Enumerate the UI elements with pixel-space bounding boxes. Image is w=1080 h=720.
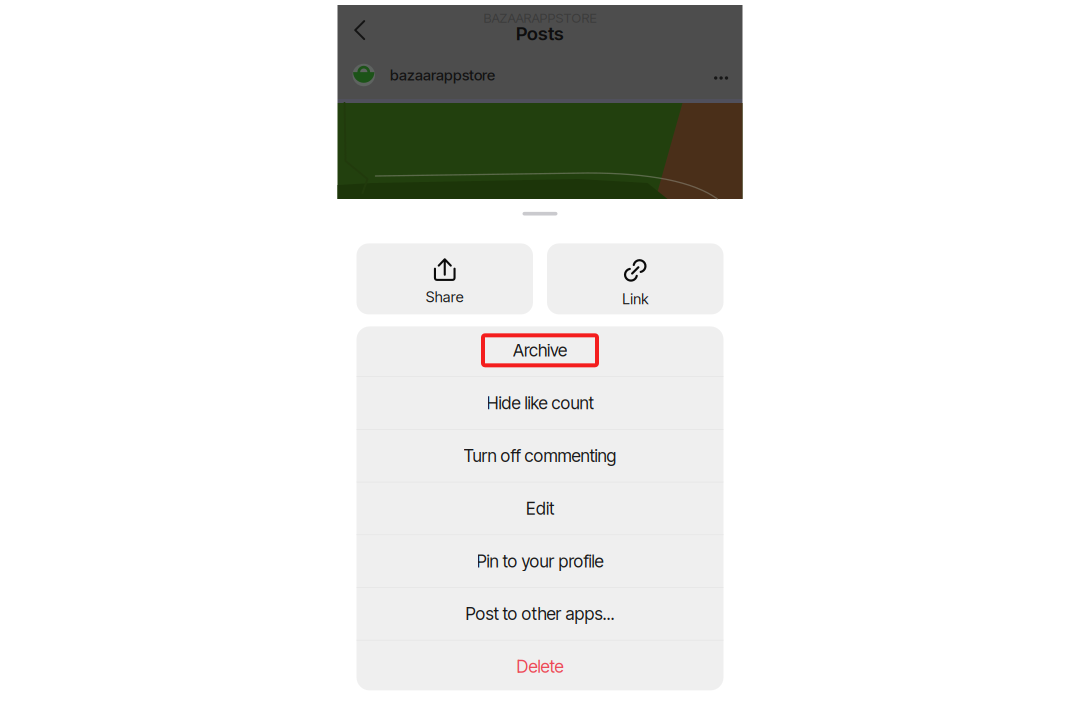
button[interactable]: More options bbox=[714, 64, 728, 86]
button[interactable]: Turn off commenting bbox=[356, 430, 723, 482]
staticText: Edit bbox=[526, 498, 554, 519]
staticText: Hide like count bbox=[486, 392, 593, 413]
button[interactable]: Archive bbox=[356, 324, 723, 376]
staticText: bazaarappstore bbox=[390, 66, 495, 84]
staticText: BAZAARAPPSTORE bbox=[483, 10, 596, 26]
staticText: Pin to your profile bbox=[476, 551, 603, 572]
staticText: Link bbox=[622, 290, 648, 308]
button[interactable]: Link bbox=[547, 243, 723, 314]
button[interactable]: Pin to your profile bbox=[356, 535, 723, 587]
staticText: Archive bbox=[513, 340, 567, 361]
button[interactable]: Back bbox=[337, 6, 381, 54]
button[interactable]: Post to other apps... bbox=[356, 588, 723, 640]
staticText: Share bbox=[426, 288, 464, 306]
button[interactable]: Edit bbox=[356, 482, 723, 534]
staticText: Post to other apps... bbox=[465, 603, 614, 624]
button[interactable]: Delete bbox=[356, 640, 723, 692]
staticText: Delete bbox=[516, 656, 563, 677]
button[interactable]: Hide like count bbox=[356, 377, 723, 429]
button[interactable]: Share bbox=[356, 243, 533, 314]
staticText: Posts bbox=[516, 22, 564, 45]
staticText: Turn off commenting bbox=[463, 445, 616, 466]
